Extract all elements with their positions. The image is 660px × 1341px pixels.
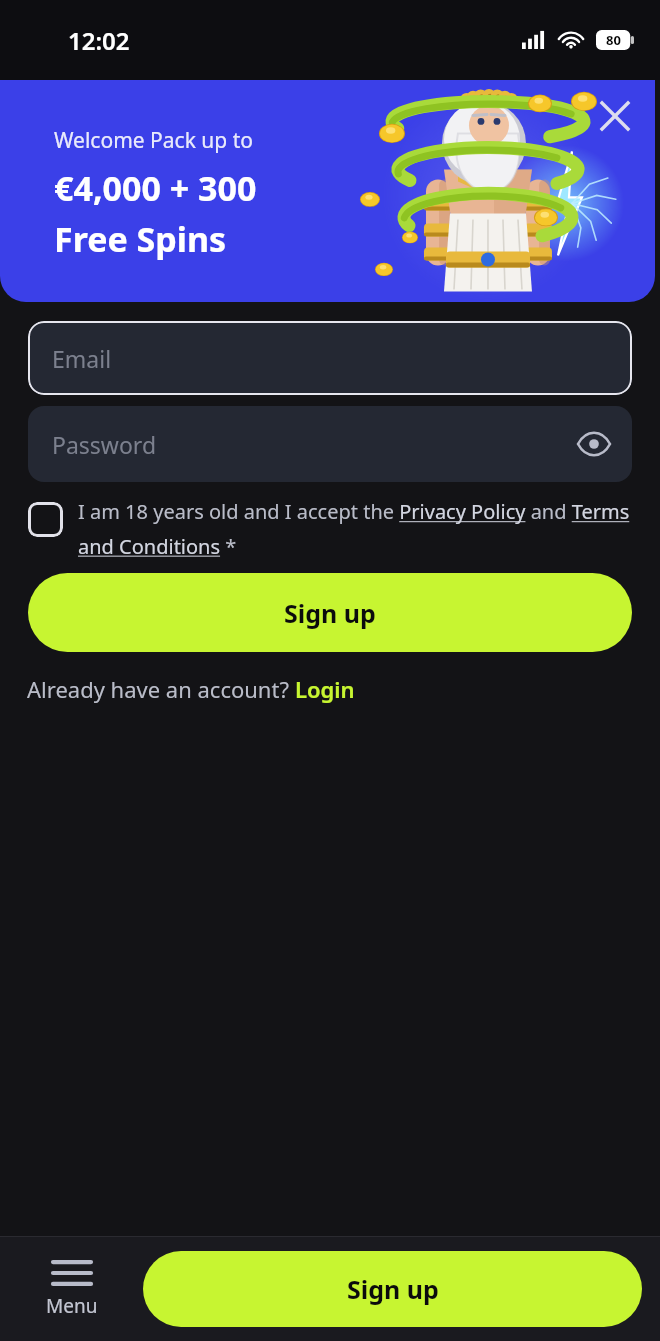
button[interactable]: Accept terms checkbox	[28, 502, 63, 537]
staticText: I am 18 years old and I accept the Priva…	[78, 498, 636, 560]
staticText: Email	[52, 343, 112, 374]
staticText: Password	[52, 429, 157, 460]
staticText: 80	[606, 31, 621, 49]
staticText: Welcome Pack up to	[54, 126, 253, 155]
button[interactable]: Show password	[570, 420, 618, 468]
button[interactable]: Close	[589, 90, 641, 142]
staticText: €4,000 + 300	[54, 165, 257, 211]
button[interactable]: Email	[28, 321, 632, 395]
staticText: Free Spins	[54, 216, 227, 262]
staticText: 12:02	[68, 24, 130, 57]
button[interactable]: Sign up	[28, 573, 632, 652]
button[interactable]: Password	[28, 406, 632, 482]
staticText: Sign up	[347, 1272, 439, 1306]
button[interactable]: Login	[295, 674, 355, 704]
button[interactable]: Menu	[38, 1256, 106, 1323]
staticText: Menu	[46, 1293, 98, 1319]
staticText: Login	[295, 674, 355, 704]
button[interactable]: Sign up	[143, 1251, 642, 1327]
staticText: Sign up	[284, 596, 376, 630]
button[interactable]: Accept terms checkbox	[28, 498, 636, 560]
staticText: Already have an account?	[27, 674, 295, 704]
